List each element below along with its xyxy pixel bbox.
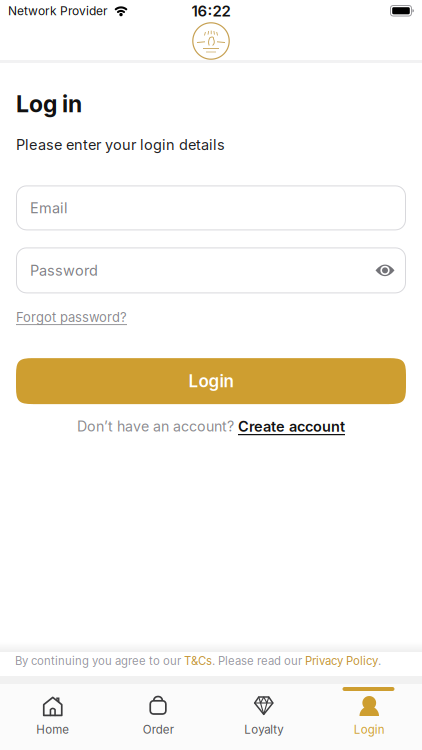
button[interactable]: Create account	[238, 418, 345, 435]
staticText: Order	[143, 722, 174, 736]
staticText: 16:22	[191, 2, 230, 20]
button[interactable]: Login	[16, 358, 406, 404]
button[interactable]: Loyalty	[211, 684, 316, 750]
staticText: T&Cs	[184, 654, 212, 668]
button[interactable]: Order	[105, 684, 211, 750]
button[interactable]: T&Cs	[184, 654, 212, 668]
staticText: By continuing you agree to our	[15, 654, 184, 668]
button[interactable]: Password	[16, 247, 406, 293]
staticText: Please enter your login details	[16, 136, 225, 153]
staticText: Loyalty	[244, 722, 283, 736]
button[interactable]: Home	[0, 684, 105, 750]
staticText: Password	[30, 262, 98, 279]
staticText: Forgot password?	[16, 309, 127, 325]
staticText: Network Provider	[8, 4, 108, 18]
button[interactable]: Email	[16, 185, 406, 230]
staticText: Login	[188, 371, 233, 391]
staticText: Create account	[238, 418, 345, 435]
button[interactable]: Forgot password?	[16, 309, 127, 325]
button[interactable]: Privacy Policy	[305, 654, 378, 668]
button[interactable]: Login	[316, 684, 422, 750]
staticText: Don’t have an account?	[77, 418, 238, 435]
staticText: Login	[354, 722, 385, 736]
staticText: Log in	[16, 90, 82, 118]
staticText: . Please read our	[212, 654, 305, 668]
staticText: Home	[36, 722, 69, 736]
staticText: .	[378, 654, 381, 668]
staticText: Privacy Policy	[305, 654, 378, 668]
staticText: Email	[30, 199, 68, 217]
